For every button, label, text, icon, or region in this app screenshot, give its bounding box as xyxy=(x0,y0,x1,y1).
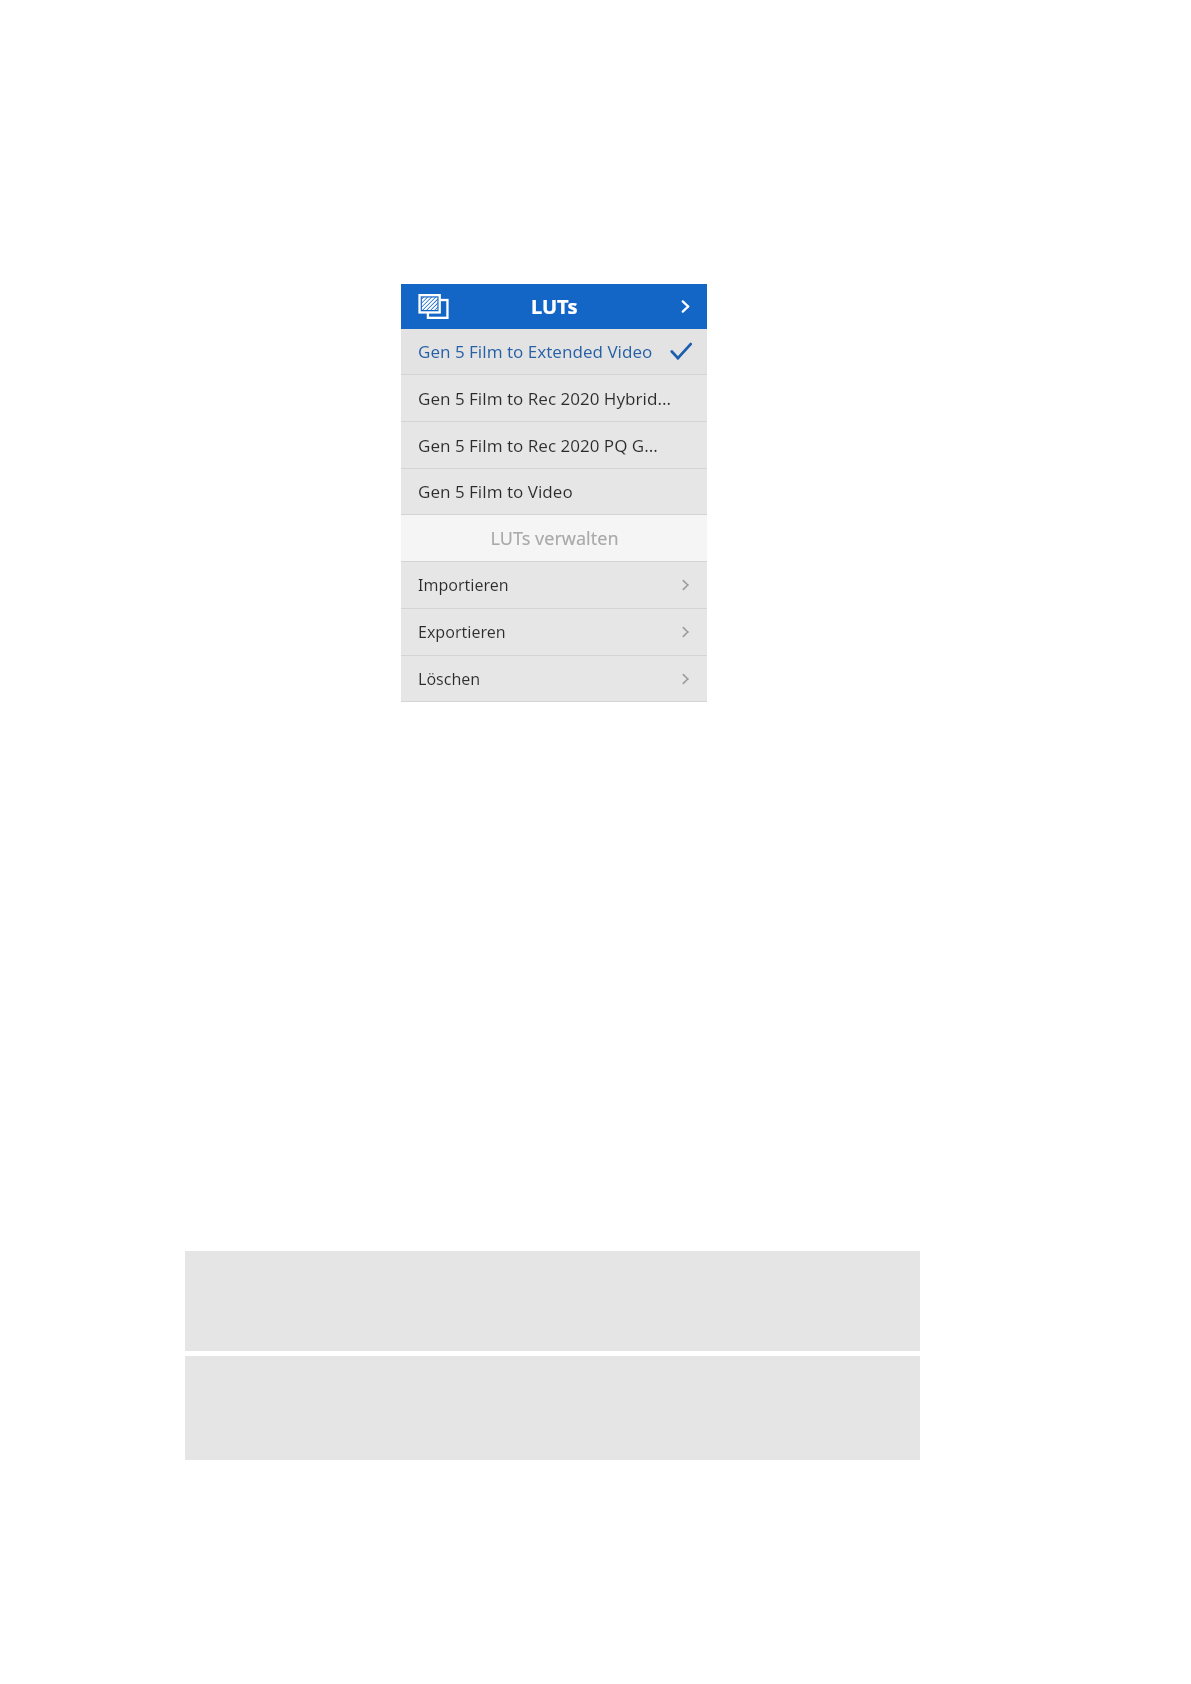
button[interactable]: LUTs verwalten xyxy=(401,515,707,561)
staticText: Gen 5 Film to Rec 2020 PQ G... xyxy=(418,434,658,457)
staticText: Gen 5 Film to Video xyxy=(418,480,573,503)
button[interactable]: Gen 5 Film to Extended Video xyxy=(401,329,707,374)
other: LUTs layers xyxy=(418,293,449,320)
button[interactable]: LUTs layers xyxy=(401,284,707,329)
staticText: Gen 5 Film to Rec 2020 Hybrid... xyxy=(418,387,672,410)
button[interactable]: Löschen xyxy=(401,656,707,701)
button[interactable]: Exportieren xyxy=(401,609,707,655)
button[interactable]: Gen 5 Film to Rec 2020 PQ G... xyxy=(401,422,707,468)
staticText: Gen 5 Film to Extended Video xyxy=(418,340,653,363)
staticText: Löschen xyxy=(418,668,481,690)
staticText: Exportieren xyxy=(418,621,506,643)
button[interactable]: Importieren xyxy=(401,562,707,608)
staticText: LUTs xyxy=(531,293,578,320)
button[interactable]: Gen 5 Film to Video xyxy=(401,469,707,514)
staticText: LUTs verwalten xyxy=(490,526,619,551)
other: Open LUTs submenu xyxy=(680,297,692,316)
button[interactable]: Gen 5 Film to Rec 2020 Hybrid... xyxy=(401,375,707,421)
staticText: Importieren xyxy=(418,574,509,596)
